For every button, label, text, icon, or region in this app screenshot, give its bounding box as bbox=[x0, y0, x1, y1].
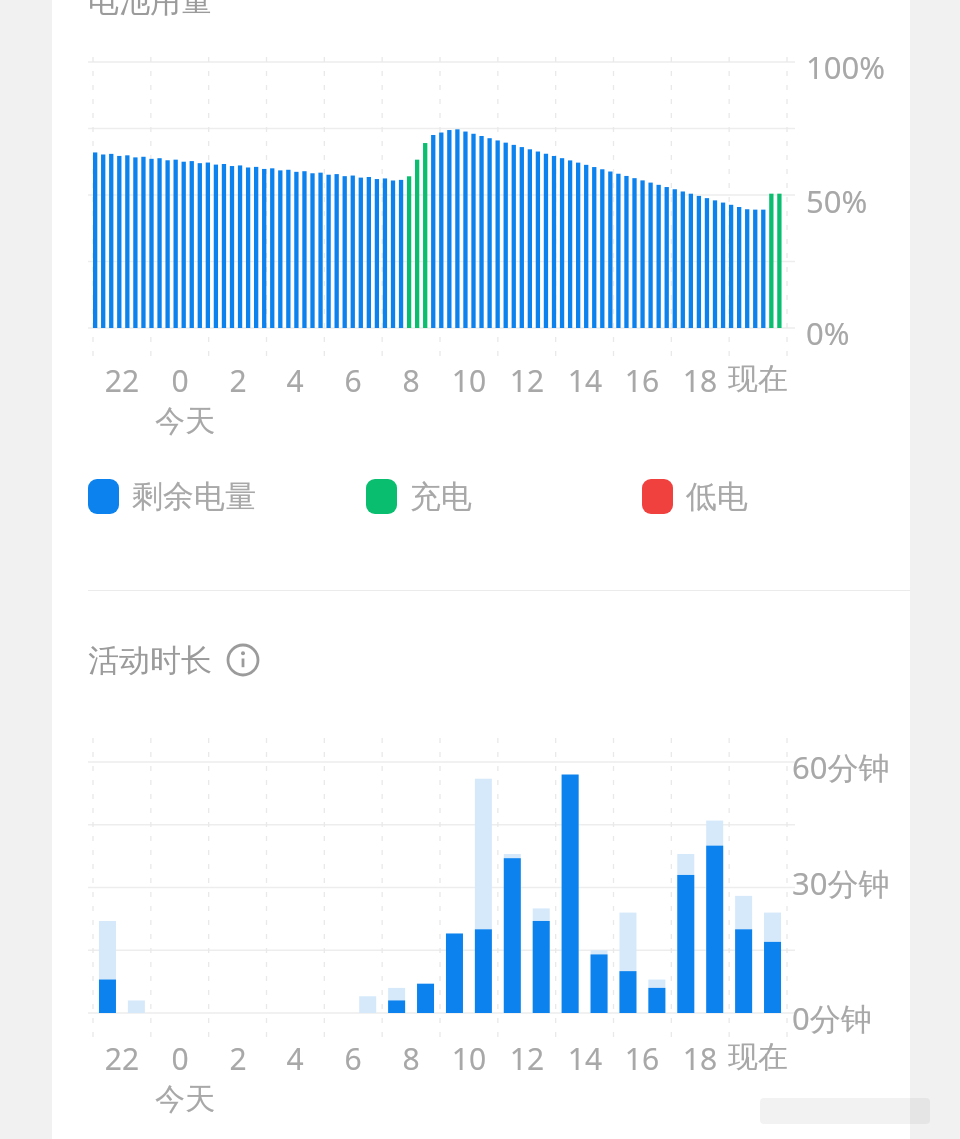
staticText: 0 bbox=[157, 360, 203, 401]
staticText: 今天 bbox=[155, 402, 215, 440]
button[interactable]: 充电 bbox=[366, 477, 472, 516]
button[interactable]: 活动时长 bbox=[88, 636, 260, 684]
staticText: 16 bbox=[619, 1038, 665, 1079]
staticText: 50% bbox=[806, 180, 868, 222]
staticText: 6 bbox=[330, 1038, 376, 1079]
staticText: 16 bbox=[619, 360, 665, 401]
staticText: 8 bbox=[388, 1038, 434, 1079]
button[interactable]: 低电 bbox=[642, 477, 748, 516]
staticText: 12 bbox=[504, 1038, 550, 1079]
staticText: 30分钟 bbox=[792, 862, 890, 904]
staticText: 0分钟 bbox=[792, 997, 872, 1039]
staticText: 100% bbox=[806, 46, 885, 88]
staticText: 10 bbox=[446, 1038, 492, 1079]
staticText: 4 bbox=[272, 1038, 318, 1079]
staticText: 18 bbox=[677, 1038, 723, 1079]
staticText: 60分钟 bbox=[792, 746, 890, 788]
staticText: 0% bbox=[806, 312, 850, 354]
staticText: 22 bbox=[99, 1038, 145, 1079]
staticText: 10 bbox=[446, 360, 492, 401]
staticText: 8 bbox=[388, 360, 434, 401]
staticText: 12 bbox=[504, 360, 550, 401]
staticText: 4 bbox=[272, 360, 318, 401]
staticText: 电池用量 bbox=[88, 0, 212, 20]
staticText: 0 bbox=[157, 1038, 203, 1079]
button[interactable]: 剩余电量 bbox=[88, 477, 256, 516]
staticText: 6 bbox=[330, 360, 376, 401]
other: 关于活动时长 bbox=[226, 643, 260, 677]
staticText: 充电 bbox=[410, 477, 472, 516]
staticText: 活动时长 bbox=[88, 641, 212, 680]
staticText: 14 bbox=[562, 1038, 608, 1079]
staticText: 今天 bbox=[155, 1080, 215, 1118]
staticText: 现在 bbox=[718, 1038, 798, 1076]
staticText: 低电 bbox=[686, 477, 748, 516]
staticText: 2 bbox=[215, 360, 261, 401]
staticText: 18 bbox=[677, 360, 723, 401]
staticText: 现在 bbox=[718, 360, 798, 398]
staticText: 22 bbox=[99, 360, 145, 401]
staticText: 14 bbox=[562, 360, 608, 401]
staticText: 2 bbox=[215, 1038, 261, 1079]
staticText: 剩余电量 bbox=[132, 477, 256, 516]
